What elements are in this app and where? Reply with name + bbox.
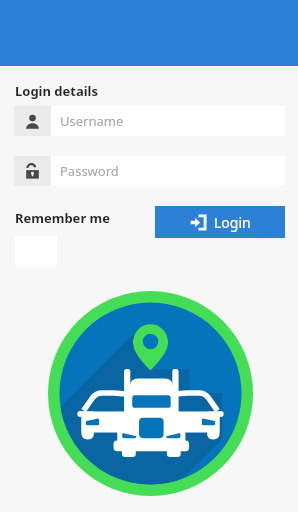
button[interactable]: Username [51,106,285,136]
staticText: Login details [15,82,99,100]
staticText: Username [60,112,124,130]
button[interactable]: Login [155,206,285,238]
staticText: Login [214,213,251,232]
staticText: Remember me [15,209,111,227]
staticText: Password [60,162,119,180]
button[interactable]: Password [51,156,285,186]
